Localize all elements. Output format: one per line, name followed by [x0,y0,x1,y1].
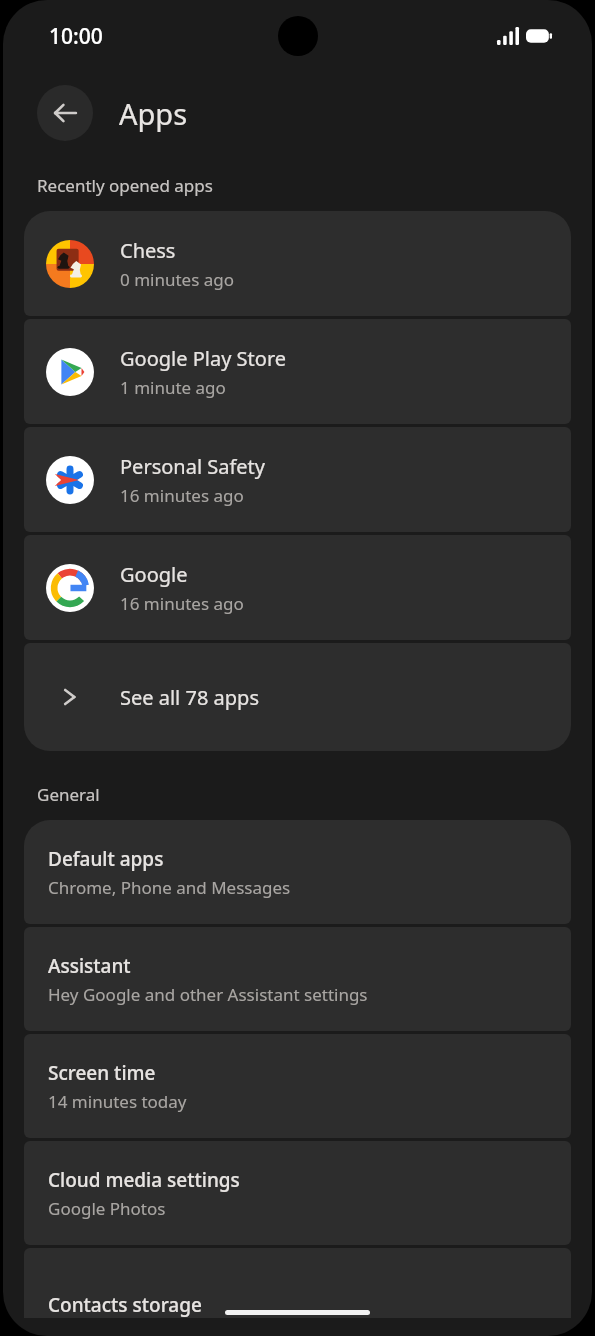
staticText: Personal Safety [120,453,266,480]
staticText: Chrome, Phone and Messages [48,876,291,899]
staticText: Default apps [48,846,164,872]
staticText: General [37,783,100,806]
button[interactable]: See all 78 apps [24,643,571,751]
staticText: Apps [119,94,188,133]
button[interactable]: Screen time [24,1034,571,1138]
staticText: 0 minutes ago [120,268,235,291]
button[interactable]: Google Play Store [24,319,571,424]
button[interactable]: Google [24,535,571,640]
staticText: Screen time [48,1060,156,1086]
staticText: Google [120,561,188,588]
staticText: 10:00 [49,22,103,51]
staticText: See all 78 apps [120,684,259,711]
staticText: Hey Google and other Assistant settings [48,983,368,1006]
button[interactable]: Contacts storage [24,1248,571,1318]
button[interactable]: Default apps [24,820,571,924]
button[interactable]: Personal Safety [24,427,571,532]
button[interactable]: Back [37,85,93,141]
staticText: Cloud media settings [48,1167,240,1193]
button[interactable]: Cloud media settings [24,1141,571,1245]
button[interactable]: Chess [24,211,571,316]
staticText: Assistant [48,953,131,979]
staticText: Chess [120,237,176,264]
staticText: Contacts storage [48,1292,202,1318]
staticText: Google Play Store [120,345,287,372]
staticText: 1 minute ago [120,376,226,399]
staticText: Recently opened apps [37,174,213,197]
button[interactable]: Assistant [24,927,571,1031]
staticText: 14 minutes today [48,1090,187,1113]
staticText: 16 minutes ago [120,592,244,615]
staticText: Google Photos [48,1197,166,1220]
staticText: 16 minutes ago [120,484,244,507]
